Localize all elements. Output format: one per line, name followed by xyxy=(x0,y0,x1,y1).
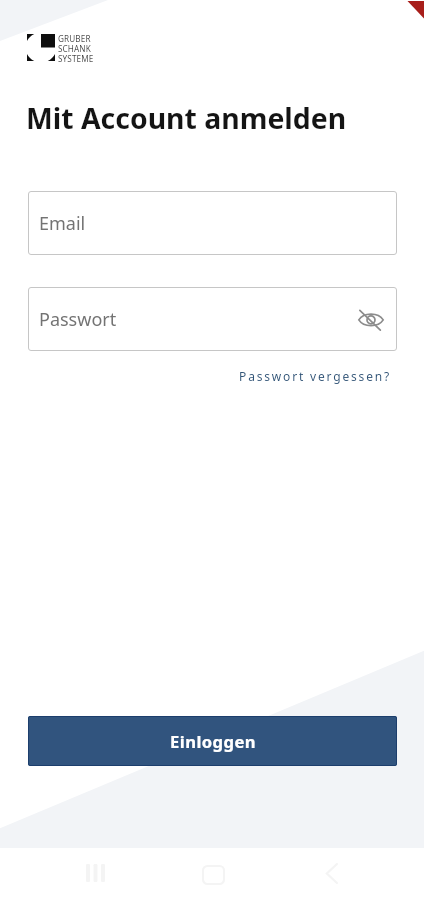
button[interactable]: Recents xyxy=(71,849,119,897)
staticText: Einloggen xyxy=(170,730,257,753)
staticText: GRUBER SCHANK SYSTEME xyxy=(58,33,94,64)
button[interactable]: Passwort anzeigen xyxy=(353,301,389,337)
staticText: Email xyxy=(39,211,86,236)
button[interactable]: Passwort xyxy=(28,287,397,351)
staticText: Passwort vergessen? xyxy=(239,368,391,384)
staticText: Mit Account anmelden xyxy=(26,99,347,138)
button[interactable]: Passwort vergessen? xyxy=(239,366,391,386)
staticText: Passwort xyxy=(39,307,117,332)
button[interactable]: Einloggen xyxy=(28,716,397,766)
button[interactable]: Email xyxy=(28,191,397,255)
